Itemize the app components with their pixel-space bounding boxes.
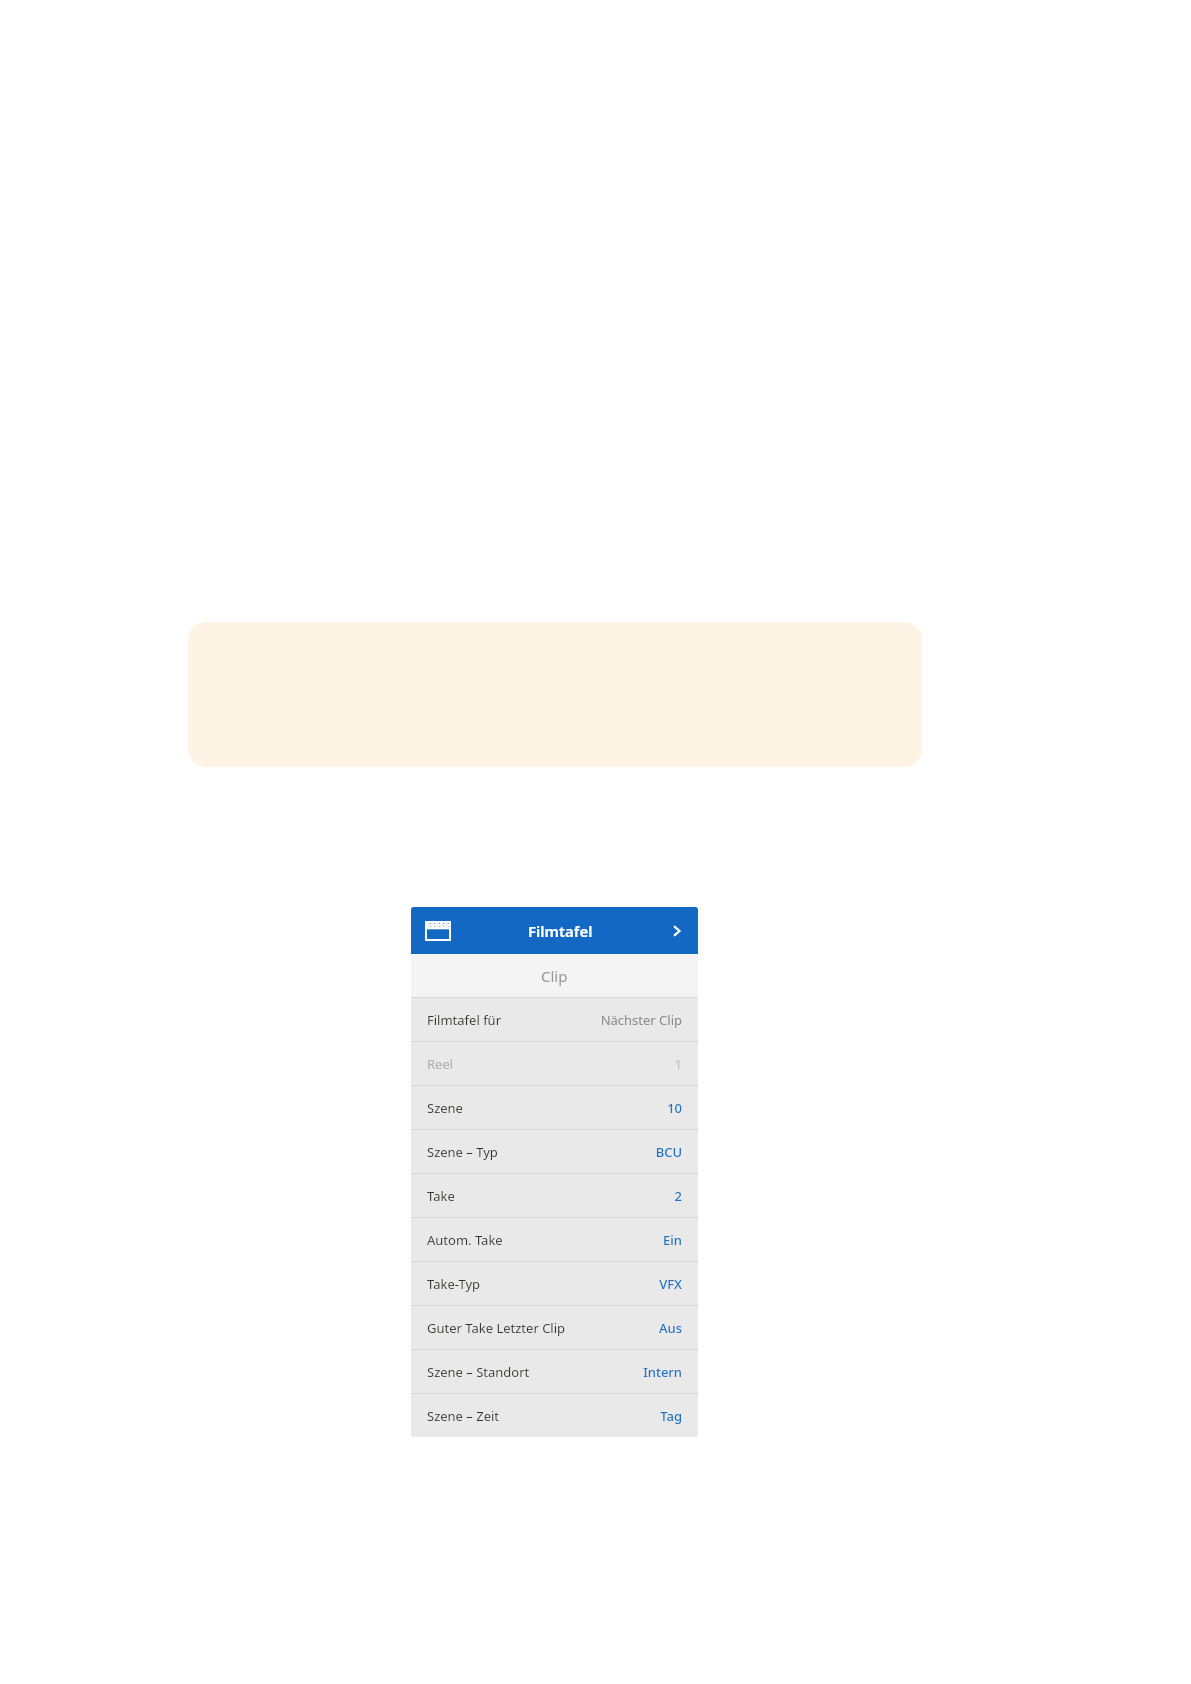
staticText: Szene – Standort bbox=[427, 1363, 643, 1381]
staticText: 2 bbox=[674, 1187, 682, 1205]
staticText: Szene bbox=[427, 1099, 667, 1117]
staticText: Filmtafel bbox=[528, 921, 593, 941]
staticText: Clip bbox=[541, 966, 568, 986]
staticText: Szene – Typ bbox=[427, 1143, 655, 1161]
staticText: 10 bbox=[667, 1099, 682, 1117]
staticText: Szene – Zeit bbox=[427, 1407, 660, 1425]
button[interactable]: Reel bbox=[411, 1042, 698, 1085]
staticText: Aus bbox=[659, 1319, 682, 1337]
staticText: VFX bbox=[659, 1275, 682, 1293]
button[interactable]: Szene bbox=[411, 1086, 698, 1129]
other: Weiter bbox=[670, 924, 684, 938]
staticText: Reel bbox=[427, 1055, 674, 1073]
staticText: BCU bbox=[655, 1143, 682, 1161]
staticText: Tag bbox=[660, 1407, 682, 1425]
button[interactable]: Take-Typ bbox=[411, 1262, 698, 1305]
staticText: Take-Typ bbox=[427, 1275, 659, 1293]
staticText: Autom. Take bbox=[427, 1231, 663, 1249]
staticText: Take bbox=[427, 1187, 674, 1205]
button[interactable]: Filmtafel für bbox=[411, 998, 698, 1041]
button[interactable]: Szene – Typ bbox=[411, 1130, 698, 1173]
button[interactable]: Take bbox=[411, 1174, 698, 1217]
staticText: Guter Take Letzter Clip bbox=[427, 1319, 659, 1337]
staticText: Nächster Clip bbox=[600, 1011, 682, 1029]
staticText: Intern bbox=[643, 1363, 682, 1381]
staticText: 1 bbox=[674, 1055, 682, 1073]
staticText: Filmtafel für bbox=[427, 1011, 600, 1029]
button[interactable]: Szene – Zeit bbox=[411, 1394, 698, 1437]
button[interactable]: Filmtafel bbox=[411, 907, 698, 954]
staticText: Ein bbox=[663, 1231, 682, 1249]
button[interactable]: Autom. Take bbox=[411, 1218, 698, 1261]
button[interactable]: Guter Take Letzter Clip bbox=[411, 1306, 698, 1349]
button[interactable]: Szene – Standort bbox=[411, 1350, 698, 1393]
